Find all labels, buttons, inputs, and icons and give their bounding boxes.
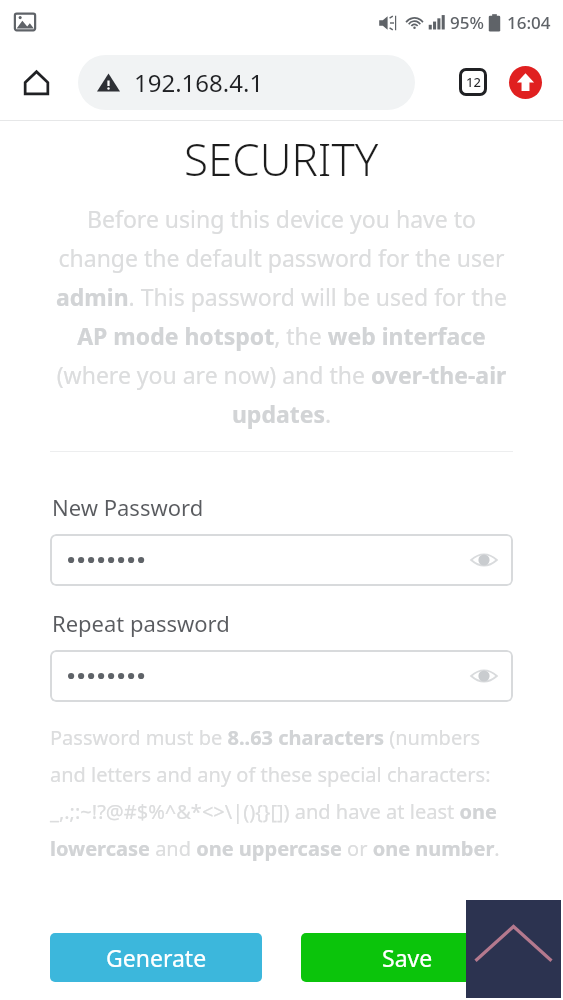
button[interactable]: 192.168.4.1 <box>78 55 415 110</box>
staticText: 95% <box>450 11 484 34</box>
button[interactable]: Show password <box>467 543 501 577</box>
button[interactable]: Navigate up <box>466 900 561 998</box>
staticText: 12 <box>466 73 481 91</box>
button[interactable]: Show password <box>50 534 513 586</box>
button[interactable]: Generate <box>50 933 262 982</box>
staticText: SECURITY <box>184 129 379 189</box>
staticText: Before using this device you have to cha… <box>54 203 509 429</box>
staticText: Password must be 8..63 characters (numbe… <box>50 724 513 862</box>
button[interactable]: Update <box>503 60 547 104</box>
button[interactable]: Home <box>14 60 58 104</box>
staticText: Repeat password <box>52 608 230 638</box>
staticText: Save <box>382 942 433 973</box>
staticText: Generate <box>106 942 207 973</box>
staticText: 16:04 <box>507 11 551 34</box>
button[interactable]: Show password <box>50 650 513 702</box>
staticText: 192.168.4.1 <box>134 66 264 99</box>
button[interactable]: Tabs <box>451 60 495 104</box>
staticText: New Password <box>52 492 204 522</box>
button[interactable]: Save <box>301 933 513 982</box>
button[interactable]: Show password <box>467 659 501 693</box>
